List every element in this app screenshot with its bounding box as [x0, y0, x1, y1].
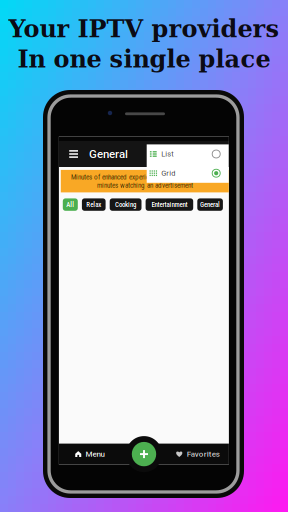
staticText: Cooking	[115, 200, 136, 209]
button[interactable]: Grid	[147, 164, 229, 183]
button[interactable]: Menu	[59, 444, 121, 464]
staticText: Relax	[86, 200, 101, 209]
button[interactable]: List	[147, 144, 229, 164]
staticText: Your IPTV providers	[8, 15, 279, 43]
button[interactable]: All	[63, 198, 78, 211]
button[interactable]: Cooking	[110, 198, 141, 211]
staticText: General	[89, 147, 128, 161]
button[interactable]: Relax	[82, 198, 106, 211]
staticText: List	[161, 150, 173, 158]
button[interactable]: General	[197, 198, 223, 211]
staticText: Minutes of enhanced experience expired, …	[71, 173, 219, 190]
staticText: Grid	[161, 169, 175, 177]
staticText: All	[66, 200, 74, 209]
button[interactable]: Entertainment	[146, 198, 193, 211]
button[interactable]: Add channel	[132, 442, 156, 466]
button[interactable]: Favorites	[167, 444, 229, 464]
staticText: Menu	[85, 449, 104, 459]
staticText: Entertainment	[151, 200, 187, 209]
button[interactable]: Open navigation menu	[65, 141, 82, 167]
staticText: Favorites	[187, 449, 220, 459]
staticText: General	[200, 200, 220, 209]
staticText: In one single place	[17, 45, 270, 73]
